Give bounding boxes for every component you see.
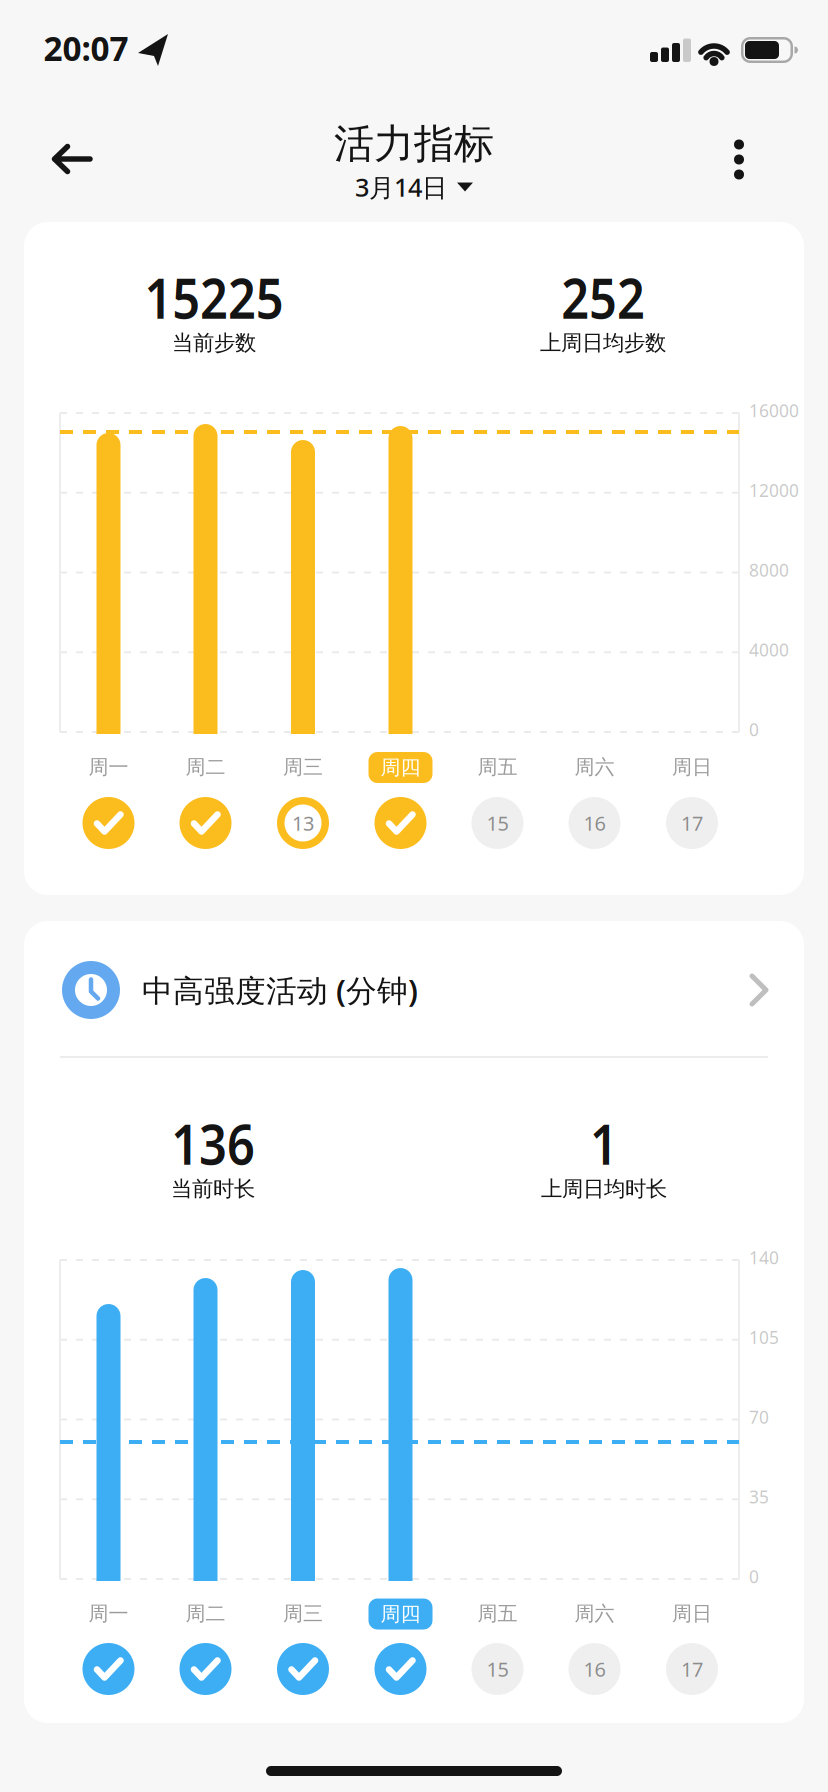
button[interactable]: 周四: [368, 1598, 432, 1629]
button[interactable]: 17: [666, 797, 718, 849]
staticText: 140: [749, 1246, 779, 1269]
staticText: 周六: [574, 755, 614, 779]
button[interactable]: 16: [568, 797, 620, 849]
staticText: 13: [292, 810, 314, 836]
button[interactable]: 3月14日: [355, 170, 473, 204]
staticText: 12000: [749, 479, 799, 502]
staticText: 105: [749, 1326, 779, 1349]
button[interactable]: [52, 146, 92, 172]
button[interactable]: 16: [568, 1643, 620, 1695]
staticText: 3月14日: [355, 170, 447, 204]
staticText: 中高强度活动 (分钟): [142, 970, 418, 1010]
button[interactable]: [82, 797, 134, 849]
staticText: 4000: [749, 638, 789, 661]
staticText: 16: [583, 1656, 605, 1682]
button[interactable]: 中高强度活动 (分钟): [62, 955, 768, 1025]
button[interactable]: 15: [471, 797, 523, 849]
staticText: 15225: [134, 260, 294, 334]
button[interactable]: [179, 797, 231, 849]
staticText: 0: [749, 718, 759, 741]
button[interactable]: [374, 797, 426, 849]
button[interactable]: [734, 139, 744, 179]
staticText: 周一: [88, 755, 128, 779]
staticText: 周一: [88, 1601, 128, 1626]
button[interactable]: [374, 1643, 426, 1695]
staticText: 上周日均步数: [540, 330, 666, 356]
staticText: 1: [588, 1106, 620, 1180]
staticText: 20:07: [43, 26, 128, 70]
button[interactable]: 17: [666, 1643, 718, 1695]
staticText: 15: [486, 1656, 508, 1682]
staticText: 0: [749, 1565, 759, 1588]
staticText: 周日: [672, 755, 712, 779]
staticText: 周二: [185, 1601, 225, 1626]
staticText: 15: [486, 810, 508, 836]
staticText: 当前时长: [171, 1176, 255, 1202]
staticText: 136: [165, 1106, 261, 1180]
button[interactable]: 13: [277, 797, 329, 849]
staticText: 周三: [283, 755, 323, 779]
staticText: 35: [749, 1485, 769, 1508]
staticText: 周六: [574, 1601, 614, 1626]
staticText: 16000: [749, 399, 799, 422]
button[interactable]: [277, 1643, 329, 1695]
staticText: 周日: [672, 1601, 712, 1626]
staticText: 周四: [380, 755, 420, 780]
button[interactable]: [179, 1643, 231, 1695]
staticText: 252: [555, 260, 651, 334]
button[interactable]: 15: [471, 1643, 523, 1695]
staticText: 17: [681, 810, 703, 836]
staticText: 活力指标: [334, 119, 494, 168]
staticText: 上周日均时长: [541, 1176, 667, 1202]
staticText: 周二: [185, 755, 225, 779]
staticText: 当前步数: [172, 330, 256, 356]
button[interactable]: 周四: [368, 752, 432, 783]
staticText: 8000: [749, 558, 789, 581]
staticText: 16: [583, 810, 605, 836]
staticText: 周四: [380, 1602, 420, 1626]
staticText: 周五: [477, 1601, 517, 1626]
button[interactable]: [82, 1643, 134, 1695]
staticText: 周五: [477, 755, 517, 779]
staticText: 17: [681, 1656, 703, 1682]
staticText: 70: [749, 1405, 769, 1428]
staticText: 周三: [283, 1601, 323, 1626]
